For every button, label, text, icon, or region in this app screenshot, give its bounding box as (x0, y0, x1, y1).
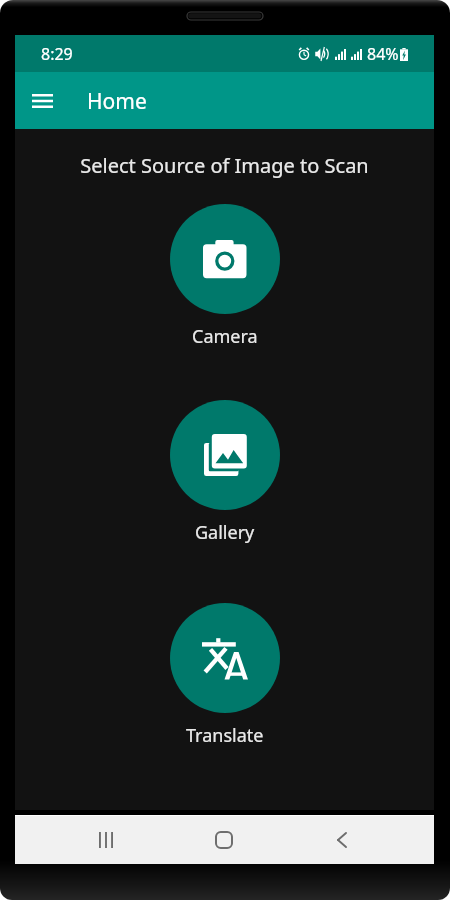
button[interactable]: Home (202, 818, 246, 862)
button[interactable]: Recent apps (84, 818, 128, 862)
staticText: Home (87, 87, 147, 116)
staticText: Select Source of Image to Scan (15, 152, 434, 179)
staticText: Gallery (195, 520, 255, 545)
staticText: Translate (186, 723, 264, 748)
button[interactable]: Gallery (170, 400, 280, 510)
button[interactable]: Translate (170, 603, 280, 713)
staticText: 84% (367, 43, 399, 65)
staticText: Camera (192, 324, 258, 349)
button[interactable]: Open navigation menu (19, 78, 65, 124)
button[interactable]: Camera (170, 204, 280, 314)
staticText: 8:29 (41, 43, 73, 65)
button[interactable]: Back (320, 818, 364, 862)
